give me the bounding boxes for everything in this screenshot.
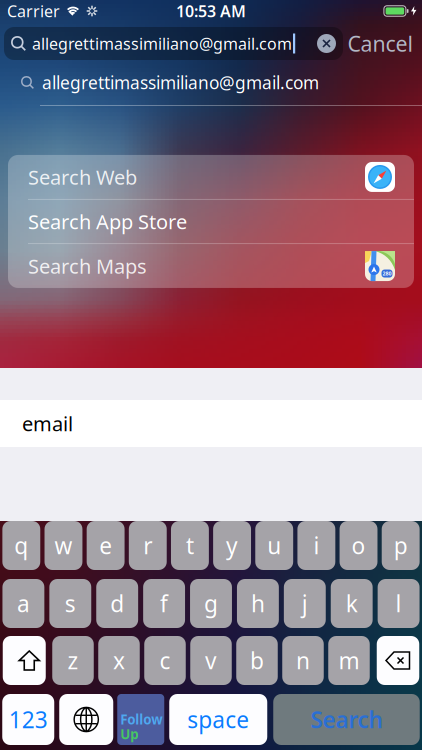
button[interactable]: p	[382, 521, 420, 570]
staticText: t	[186, 530, 194, 560]
staticText: space	[187, 704, 249, 734]
button[interactable]: k	[331, 579, 373, 628]
button[interactable]: Clear text	[317, 34, 336, 53]
button[interactable]: Search Maps	[8, 244, 414, 288]
button[interactable]: Search	[273, 694, 420, 745]
staticText: allegrettimassimiliano@gmail.com	[42, 71, 319, 94]
staticText: c	[159, 645, 170, 675]
staticText: k	[346, 588, 358, 618]
staticText: i	[313, 530, 319, 560]
button[interactable]: s	[49, 579, 91, 628]
staticText: Search	[310, 704, 382, 734]
staticText: u	[267, 530, 281, 560]
staticText: q	[14, 530, 28, 560]
staticText: Follow	[120, 711, 162, 728]
button[interactable]: Cancel	[343, 27, 418, 60]
staticText: Search Web	[28, 164, 137, 190]
button[interactable]: allegrettimassimiliano@gmail.com	[0, 60, 422, 106]
staticText: email	[22, 410, 73, 437]
staticText: m	[338, 645, 359, 675]
staticText: Search App Store	[28, 208, 187, 235]
staticText: w	[54, 530, 72, 560]
button[interactable]: space	[169, 694, 267, 745]
button[interactable]: i	[297, 521, 335, 570]
button[interactable]: c	[144, 636, 186, 685]
staticText: z	[67, 645, 78, 675]
staticText: n	[296, 645, 310, 675]
staticText: o	[351, 530, 365, 560]
button[interactable]: z	[52, 636, 94, 685]
button[interactable]: Shift	[3, 636, 46, 685]
button[interactable]: Next keyboard	[59, 694, 113, 745]
button[interactable]: h	[237, 579, 279, 628]
staticText: d	[110, 588, 124, 618]
staticText: 10:53 AM	[176, 0, 246, 22]
button[interactable]: x	[98, 636, 140, 685]
button[interactable]: Search App Store	[8, 200, 414, 243]
staticText: Cancel	[347, 29, 413, 58]
button[interactable]: m	[328, 636, 370, 685]
button[interactable]: e	[87, 521, 125, 570]
button[interactable]: u	[255, 521, 293, 570]
staticText: r	[143, 530, 152, 560]
button[interactable]: n	[282, 636, 324, 685]
button[interactable]: w	[44, 521, 82, 570]
button[interactable]: v	[190, 636, 232, 685]
button[interactable]: FollowUp keyboard	[117, 694, 164, 745]
button[interactable]: t	[171, 521, 209, 570]
staticText: l	[396, 588, 402, 618]
staticText: g	[204, 588, 218, 618]
button[interactable]: Search field	[4, 27, 343, 60]
staticText: f	[160, 588, 168, 618]
staticText: j	[302, 588, 308, 618]
staticText: e	[99, 530, 112, 560]
staticText: s	[65, 588, 76, 618]
button[interactable]: a	[2, 579, 44, 628]
staticText: 123	[9, 704, 48, 734]
button[interactable]: Search Web	[8, 155, 414, 199]
staticText: Search Maps	[28, 253, 147, 279]
button[interactable]: o	[340, 521, 377, 570]
button[interactable]: email	[0, 400, 422, 447]
button[interactable]: r	[129, 521, 167, 570]
button[interactable]: f	[143, 579, 185, 628]
button[interactable]: q	[2, 521, 40, 570]
button[interactable]: l	[378, 579, 419, 628]
button[interactable]: j	[284, 579, 326, 628]
button[interactable]: 123	[2, 694, 54, 745]
staticText: 280	[382, 270, 391, 277]
staticText: v	[205, 645, 217, 675]
staticText: p	[394, 530, 408, 560]
staticText: Carrier	[7, 0, 60, 22]
staticText: b	[250, 645, 264, 675]
staticText: h	[251, 588, 265, 618]
button[interactable]: d	[96, 579, 138, 628]
button[interactable]: Delete	[377, 636, 419, 685]
staticText: y	[226, 530, 238, 560]
staticText: allegrettimassimiliano@gmail.com	[32, 33, 292, 54]
staticText: Up	[120, 725, 138, 743]
button[interactable]: g	[190, 579, 232, 628]
staticText: x	[113, 645, 125, 675]
button[interactable]: y	[213, 521, 251, 570]
button[interactable]: b	[236, 636, 278, 685]
staticText: a	[17, 588, 30, 618]
